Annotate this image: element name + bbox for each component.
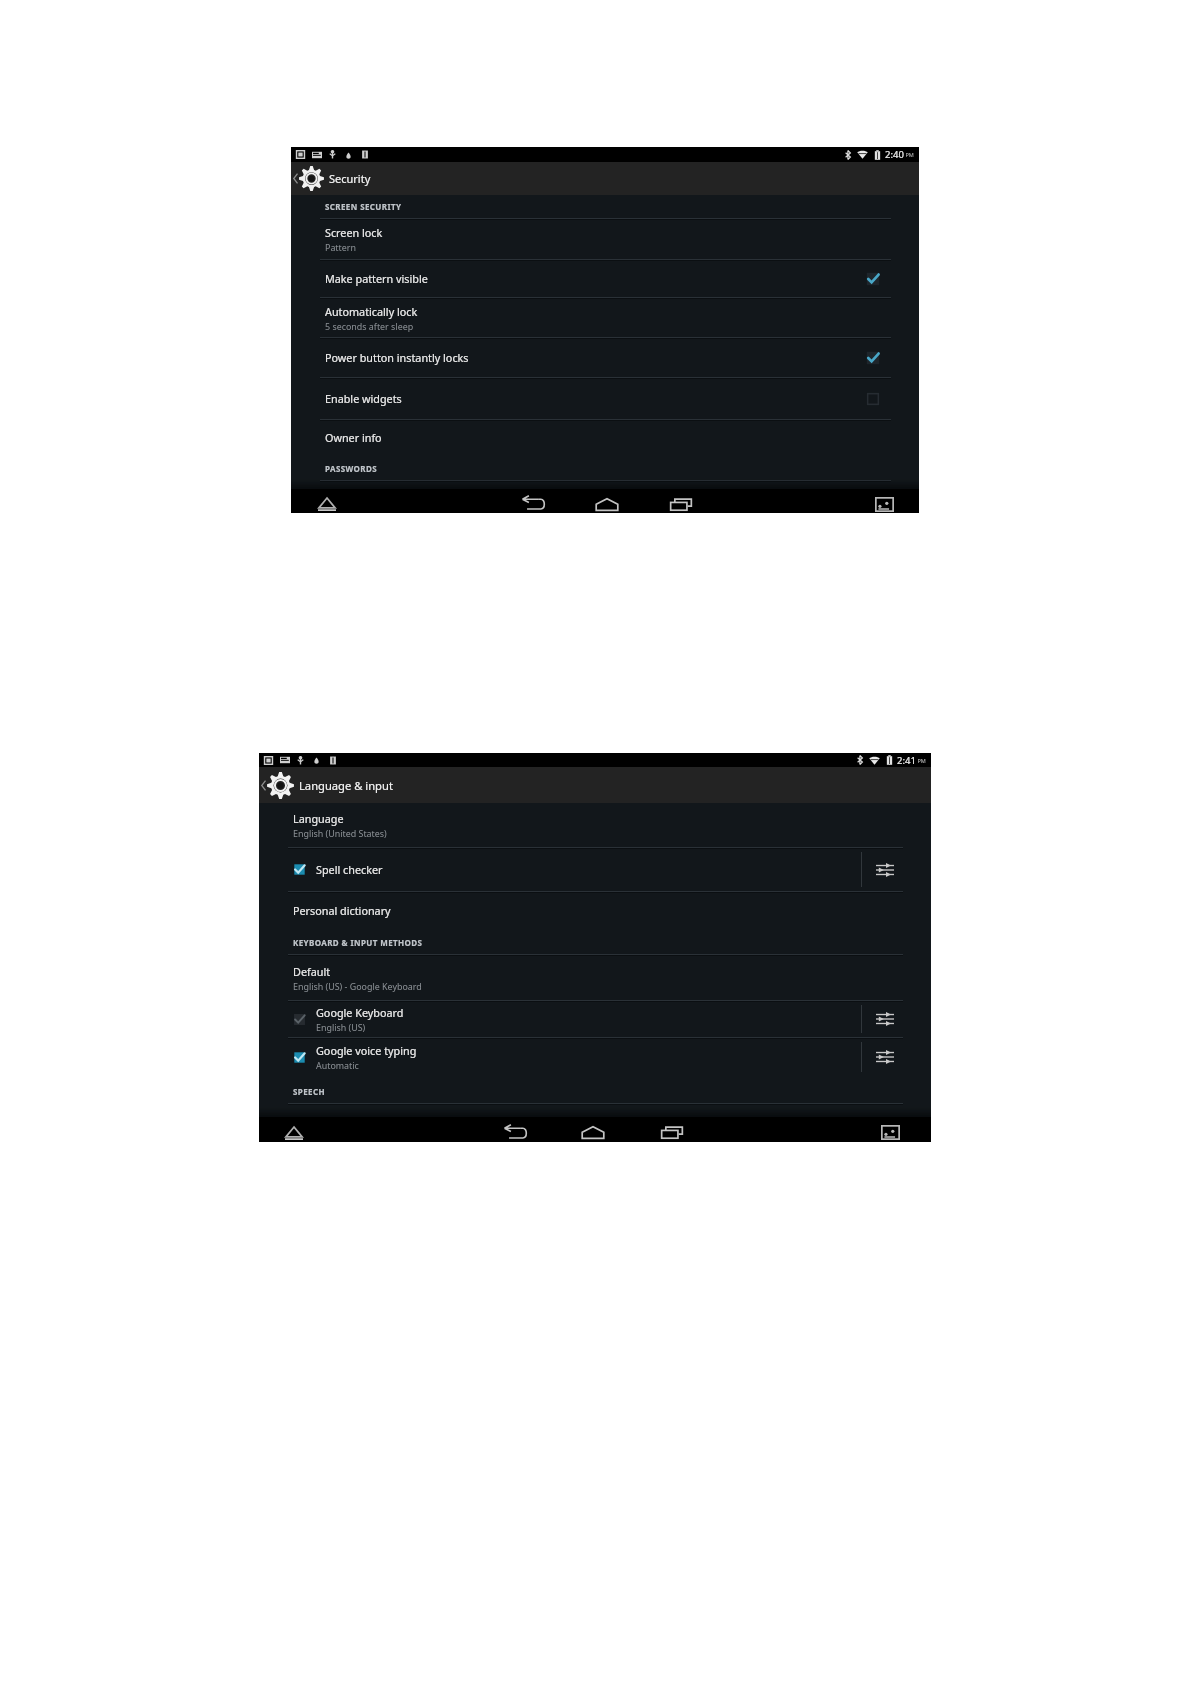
button[interactable]: Default (259, 955, 931, 1000)
button[interactable]: Back (500, 1120, 530, 1145)
button[interactable]: Home (578, 1120, 608, 1145)
staticText: Google Keyboard (316, 1005, 404, 1020)
staticText: 2:40 (885, 148, 904, 161)
staticText: Pattern (325, 241, 356, 253)
button[interactable]: Screen lock (291, 219, 919, 259)
staticText: Language (293, 811, 344, 826)
button[interactable]: Personal dictionary (259, 892, 931, 928)
staticText: Enable widgets (325, 391, 402, 406)
button[interactable]: Menu (312, 492, 342, 516)
button[interactable]: Settings (862, 1038, 931, 1076)
button[interactable]: Recents (666, 492, 696, 516)
button[interactable]: Recents (657, 1120, 687, 1145)
button[interactable]: Automatically lock (291, 298, 919, 337)
button[interactable]: Settings (862, 848, 931, 891)
staticText: Automatic (316, 1059, 359, 1071)
button[interactable]: Google Keyboard (259, 1001, 861, 1037)
staticText: PM (904, 151, 914, 158)
staticText: Make pattern visible (325, 271, 428, 286)
button[interactable]: Make pattern visible (291, 260, 919, 297)
button[interactable]: Power button instantly locks (291, 338, 919, 377)
button[interactable]: Settings (862, 1001, 931, 1037)
staticText: Security (329, 171, 371, 186)
button[interactable]: Up (291, 162, 919, 195)
button[interactable]: Enable widgets (291, 378, 919, 419)
button[interactable]: Back (518, 492, 548, 516)
staticText: English (US) (316, 1021, 366, 1033)
staticText: Power button instantly locks (325, 350, 469, 365)
staticText: English (United States) (293, 827, 387, 839)
button[interactable]: Up (259, 767, 931, 803)
staticText: Spell checker (316, 862, 383, 877)
staticText: Google voice typing (316, 1043, 417, 1058)
staticText: Language & input (299, 778, 393, 793)
button[interactable]: Screenshot (875, 1120, 905, 1145)
button[interactable]: Language (259, 803, 931, 847)
staticText: PM (916, 757, 926, 764)
button[interactable]: Menu (279, 1120, 309, 1145)
button[interactable]: Spell checker (259, 848, 861, 891)
staticText: Personal dictionary (293, 903, 391, 918)
button[interactable]: Owner info (291, 420, 919, 455)
staticText: 2:41 (897, 754, 916, 767)
button[interactable]: Google voice typing (259, 1038, 861, 1076)
button[interactable]: Home (592, 492, 622, 516)
staticText: SCREEN SECURITY (325, 201, 402, 212)
staticText: Default (293, 964, 331, 979)
staticText: PASSWORDS (325, 463, 378, 474)
staticText: 5 seconds after sleep (325, 320, 414, 332)
staticText: Automatically lock (325, 304, 418, 319)
staticText: Owner info (325, 430, 382, 445)
staticText: English (US) - Google Keyboard (293, 980, 422, 992)
staticText: Screen lock (325, 225, 383, 240)
staticText: SPEECH (293, 1086, 325, 1097)
button[interactable]: Screenshot (869, 492, 899, 516)
staticText: KEYBOARD & INPUT METHODS (293, 937, 423, 948)
